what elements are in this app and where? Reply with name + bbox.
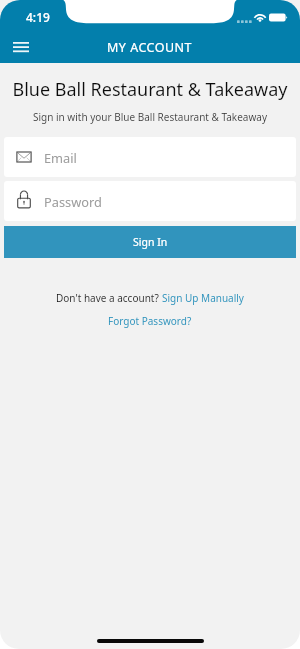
staticText: Password xyxy=(44,193,102,210)
staticText: Email xyxy=(44,149,77,166)
button[interactable]: Open navigation menu xyxy=(0,24,42,63)
staticText: Don't have a account? xyxy=(56,291,162,305)
button[interactable]: Password xyxy=(4,181,296,221)
button[interactable]: Sign In xyxy=(4,226,296,258)
button[interactable]: Email xyxy=(4,137,296,177)
staticText: Blue Ball Restaurant & Takeaway xyxy=(6,77,294,102)
staticText: Forgot Password? xyxy=(108,314,192,328)
staticText: Sign Up Manually xyxy=(162,291,244,305)
staticText: MY ACCOUNT xyxy=(107,39,193,56)
button[interactable]: Sign Up Manually xyxy=(162,291,244,305)
staticText: Sign In xyxy=(133,235,168,249)
button[interactable]: Forgot Password? xyxy=(108,314,192,328)
staticText: 4:19 xyxy=(26,9,50,25)
staticText: Sign in with your Blue Ball Restaurant &… xyxy=(6,110,294,124)
